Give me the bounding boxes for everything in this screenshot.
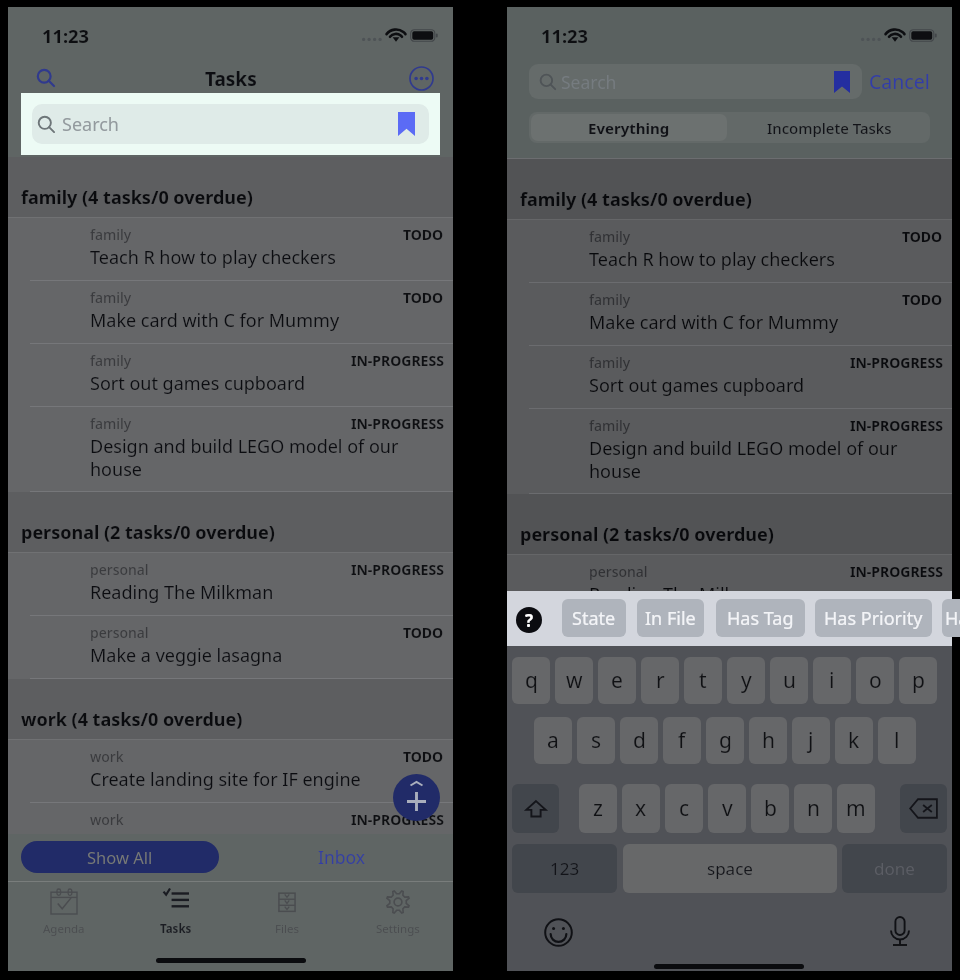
button[interactable]: a [534, 717, 572, 764]
button[interactable]: c [665, 784, 703, 833]
staticText: r [656, 666, 665, 695]
button[interactable]: b [751, 784, 789, 833]
staticText: Reading The Milkman [589, 582, 773, 607]
button[interactable]: Agenda [8, 882, 120, 971]
button[interactable]: x [622, 784, 660, 833]
staticText: personal [90, 623, 149, 642]
button[interactable]: Add task [393, 774, 440, 821]
staticText: Ha [945, 606, 960, 631]
staticText: c [679, 794, 690, 823]
button[interactable]: More options [406, 63, 436, 93]
button[interactable]: personal [507, 555, 952, 617]
button[interactable]: Search [30, 62, 62, 94]
button[interactable]: Backspace [900, 784, 947, 833]
button[interactable]: u [770, 657, 808, 704]
button[interactable]: personal [507, 618, 952, 680]
button[interactable]: Tasks [120, 882, 231, 971]
staticText: ? [525, 609, 534, 632]
staticText: k [848, 726, 860, 755]
button[interactable]: h [749, 717, 787, 764]
staticText: i [829, 666, 835, 695]
button[interactable]: o [856, 657, 894, 704]
button[interactable]: Ha [942, 599, 960, 637]
button[interactable]: t [684, 657, 722, 704]
staticText: Make card with C for Mummy [90, 308, 340, 333]
staticText: Reading The Milkman [90, 580, 274, 605]
button[interactable]: g [706, 717, 744, 764]
button[interactable]: Help [516, 607, 542, 633]
staticText: IN-PROGRESS [351, 351, 444, 370]
button[interactable]: Settings [342, 882, 453, 971]
staticText: family (4 tasks/0 overdue) [21, 185, 253, 210]
staticText: l [894, 726, 900, 755]
button[interactable]: w [555, 657, 593, 704]
button[interactable]: m [837, 784, 875, 833]
button[interactable]: k [835, 717, 873, 764]
staticText: Show All [87, 846, 153, 868]
button[interactable]: family [8, 218, 453, 280]
button[interactable]: Search [529, 64, 862, 99]
staticText: q [525, 666, 538, 695]
button[interactable]: f [663, 717, 701, 764]
button[interactable]: personal [8, 553, 453, 615]
button[interactable]: n [794, 784, 832, 833]
button[interactable]: family [507, 220, 952, 282]
button[interactable]: Cancel [869, 64, 939, 99]
button[interactable]: personal [8, 616, 453, 678]
button[interactable]: 123 [512, 844, 617, 893]
button[interactable]: work [8, 740, 453, 802]
staticText: Cancel [869, 68, 930, 95]
button[interactable]: v [708, 784, 746, 833]
button[interactable]: Search [32, 104, 429, 144]
staticText: IN-PROGRESS [351, 414, 444, 433]
button[interactable]: Has Tag [716, 599, 805, 637]
button[interactable]: work [8, 803, 453, 834]
staticText: Make card with C for Mummy [589, 310, 839, 335]
button[interactable]: Files [231, 882, 342, 971]
button[interactable]: s [577, 717, 615, 764]
staticText: Tasks [205, 66, 257, 92]
button[interactable]: family [8, 281, 453, 343]
staticText: w [566, 666, 583, 695]
staticText: Search [561, 70, 617, 94]
button[interactable]: Shift [512, 784, 559, 833]
button[interactable]: done [842, 844, 947, 893]
staticText: space [707, 857, 753, 880]
button[interactable]: l [878, 717, 916, 764]
button[interactable]: Has Priority [815, 599, 932, 637]
button[interactable]: r [641, 657, 679, 704]
button[interactable]: Dictate [884, 916, 916, 948]
staticText: TODO [902, 290, 943, 309]
button[interactable]: Show All [21, 841, 219, 873]
staticText: work (4 tasks/0 overdue) [21, 707, 243, 732]
staticText: TODO [403, 747, 444, 766]
button[interactable]: p [899, 657, 937, 704]
button[interactable]: Incomplete Tasks [729, 112, 930, 143]
button[interactable]: Emoji [544, 918, 573, 947]
button[interactable]: z [579, 784, 617, 833]
button[interactable]: q [512, 657, 550, 704]
button[interactable]: In File [637, 599, 704, 637]
staticText: Sort out games cupboard [90, 371, 306, 396]
staticText: u [783, 666, 796, 695]
staticText: Design and build LEGO model of our house [90, 434, 402, 481]
staticText: Files [275, 921, 299, 937]
button[interactable]: space [623, 844, 837, 893]
button[interactable]: family [8, 407, 453, 491]
button[interactable]: Inbox [225, 841, 459, 873]
button[interactable]: family [507, 409, 952, 493]
button[interactable]: i [813, 657, 851, 704]
staticText: Has Tag [727, 606, 794, 631]
button[interactable]: d [620, 717, 658, 764]
button[interactable]: Everything [531, 114, 727, 141]
button[interactable]: family [507, 283, 952, 345]
staticText: IN-PROGRESS [850, 416, 943, 435]
button[interactable]: State [562, 599, 626, 637]
button[interactable]: j [792, 717, 830, 764]
staticText: IN-PROGRESS [850, 353, 943, 372]
button[interactable]: e [598, 657, 636, 704]
staticText: 11:23 [541, 23, 589, 48]
button[interactable]: family [8, 344, 453, 406]
button[interactable]: family [507, 346, 952, 408]
button[interactable]: y [727, 657, 765, 704]
